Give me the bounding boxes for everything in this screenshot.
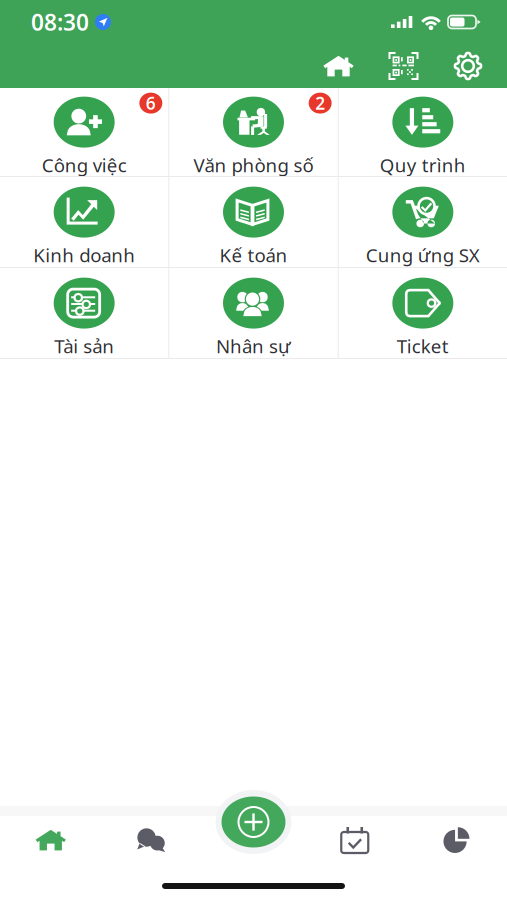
button[interactable]: Settings [436,43,507,89]
staticText: Công việc [42,153,127,177]
button[interactable]: Kinh doanh [0,177,168,266]
staticText: 6 [146,92,156,115]
button[interactable]: Calendar [304,816,405,870]
staticText: Kinh doanh [33,243,135,267]
button[interactable]: Ticket [339,268,507,357]
staticText: Văn phòng số [193,153,313,177]
button[interactable]: Create new [221,796,285,847]
staticText: Quy trình [380,153,466,177]
button[interactable]: Scan QR code [371,43,436,89]
staticText: Kế toán [219,243,287,267]
staticText: Nhân sự [216,334,291,358]
button[interactable]: Văn phòng số [169,87,338,176]
staticText: 2 [315,92,325,115]
staticText: Tài sản [54,334,114,358]
button[interactable]: Nhân sự [169,268,338,357]
button[interactable]: Quy trình [339,87,507,176]
button[interactable]: Tài sản [0,268,168,357]
button[interactable]: Home [0,816,101,870]
button[interactable]: Kế toán [169,177,338,266]
button[interactable]: Home [306,46,371,86]
button[interactable]: Reports [405,816,507,870]
staticText: Cung ứng SX [366,243,480,267]
staticText: 08:30 [31,7,89,37]
button[interactable]: Messages [101,816,203,870]
button[interactable]: Cung ứng SX [339,177,507,266]
staticText: Ticket [397,334,449,358]
button[interactable]: Công việc [0,87,168,176]
